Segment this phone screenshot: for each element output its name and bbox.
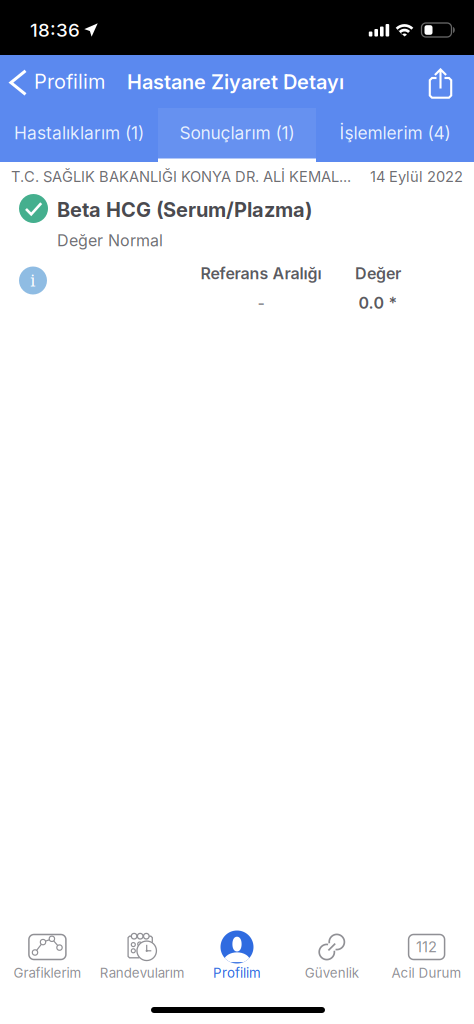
button[interactable]: Grafiklerim (0, 924, 95, 982)
staticText: Acil Durum (392, 965, 462, 981)
button[interactable]: Profilim (0, 55, 117, 108)
staticText: Referans Aralığı (200, 264, 321, 283)
staticText: Beta HCG (Serum/Plazma) (57, 198, 312, 222)
button[interactable]: Randevularım (95, 924, 190, 982)
staticText: 18:36 (30, 19, 80, 41)
staticText: Güvenlik (305, 965, 359, 981)
staticText: i (30, 270, 36, 291)
staticText: 0.0 * (358, 294, 397, 312)
button[interactable]: Hastalıklarım (1) (0, 108, 158, 162)
button[interactable]: İşlemlerim (4) (316, 108, 474, 162)
staticText: T.C. SAĞLIK BAKANLIĞI KONYA DR. ALİ KEMA… (11, 168, 351, 185)
button[interactable]: Share (416, 58, 464, 109)
staticText: Randevularım (100, 965, 185, 981)
staticText: Hastane Ziyaret Detayı (127, 70, 344, 94)
staticText: Değer (355, 264, 401, 283)
staticText: 112 (416, 938, 437, 956)
staticText: Grafiklerim (13, 965, 81, 981)
staticText: Profilim (34, 70, 105, 93)
staticText: - (257, 294, 264, 312)
staticText: İşlemlerim (4) (339, 123, 450, 143)
button[interactable]: Bilgi (13, 260, 53, 300)
staticText: 14 Eylül 2022 (370, 168, 463, 185)
button[interactable]: Sonuçlarım (1) (158, 108, 316, 162)
staticText: Sonuçlarım (1) (179, 123, 294, 143)
button[interactable]: Güvenlik (284, 924, 379, 982)
staticText: Hastalıklarım (1) (14, 123, 144, 143)
button[interactable]: 112 (379, 924, 474, 982)
staticText: Değer Normal (57, 231, 163, 250)
button[interactable]: Profilim (190, 924, 284, 982)
staticText: Profilim (213, 965, 261, 981)
